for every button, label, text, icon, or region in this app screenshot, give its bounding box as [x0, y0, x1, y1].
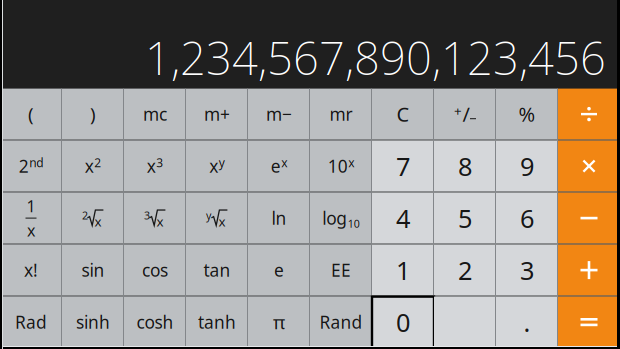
staticText: x [147, 155, 156, 178]
staticText: mc [143, 103, 167, 126]
button[interactable]: blank [434, 297, 496, 348]
staticText: x [95, 212, 102, 230]
button[interactable]: x cubed [124, 141, 186, 192]
staticText: 7 [396, 149, 410, 183]
button[interactable]: seven [372, 141, 434, 192]
staticText: 3 [144, 208, 150, 222]
staticText: 2 [19, 155, 29, 178]
staticText: ) [90, 102, 96, 126]
staticText: m− [266, 103, 292, 126]
staticText: Rand [319, 311, 362, 334]
staticText: e [271, 155, 281, 178]
staticText: x [27, 220, 35, 241]
button[interactable]: two [434, 245, 496, 296]
staticText: 3 [520, 253, 534, 287]
button[interactable]: natural logarithm [248, 193, 310, 244]
button[interactable]: factorial [0, 245, 62, 296]
staticText: 10 [348, 216, 360, 231]
button[interactable]: hyperbolic sine [62, 297, 124, 348]
button[interactable]: plus minus [434, 89, 496, 140]
button[interactable]: tangent [186, 245, 248, 296]
button[interactable]: close parenthesis [62, 89, 124, 140]
staticText: x [219, 212, 226, 230]
staticText: x! [24, 259, 38, 282]
staticText: nd [29, 155, 43, 171]
button[interactable]: pi [248, 297, 310, 348]
button[interactable]: hyperbolic cosine [124, 297, 186, 348]
button[interactable]: eight [434, 141, 496, 192]
staticText: x [157, 212, 164, 230]
button[interactable]: zero [372, 297, 434, 348]
staticText: 10 [328, 155, 348, 178]
staticText: y [219, 155, 225, 171]
staticText: % [518, 101, 535, 127]
staticText: 1,234,567,890,123,456 [145, 27, 606, 88]
button[interactable]: cube root of x [124, 193, 186, 244]
staticText: Rad [15, 311, 47, 334]
staticText: tan [203, 259, 230, 282]
staticText: 1 [396, 253, 410, 287]
button[interactable]: multiply [558, 141, 620, 192]
button[interactable]: random [310, 297, 372, 348]
button[interactable]: minus [558, 193, 620, 244]
button[interactable]: memory subtract [248, 89, 310, 140]
button[interactable]: ten to the power of x [310, 141, 372, 192]
button[interactable]: decimal point [496, 297, 558, 348]
staticText: x [348, 155, 354, 171]
staticText: mr [329, 103, 352, 126]
staticText: + [454, 102, 462, 119]
button[interactable]: one [372, 245, 434, 296]
staticText: x [85, 155, 94, 178]
staticText: / [462, 101, 469, 127]
button[interactable]: radians [0, 297, 62, 348]
staticText: 3 [156, 155, 163, 171]
button[interactable]: memory clear [124, 89, 186, 140]
staticText: x [281, 155, 287, 171]
button[interactable]: equals [558, 297, 620, 348]
button[interactable]: percent [496, 89, 558, 140]
button[interactable]: clear [372, 89, 434, 140]
button[interactable]: six [496, 193, 558, 244]
staticText: ln [271, 207, 286, 230]
button[interactable]: memory add [186, 89, 248, 140]
staticText: 2 [82, 208, 88, 222]
button[interactable]: four [372, 193, 434, 244]
button[interactable]: x to the power of y [186, 141, 248, 192]
button[interactable]: hyperbolic tangent [186, 297, 248, 348]
staticText: 2 [94, 155, 101, 171]
staticText: y [206, 208, 211, 222]
staticText: 4 [396, 201, 410, 235]
button[interactable]: open parenthesis [0, 89, 62, 140]
button[interactable]: logarithm base ten [310, 193, 372, 244]
staticText: 0 [396, 305, 410, 339]
staticText: 2 [458, 253, 472, 287]
staticText: e [274, 259, 284, 282]
button[interactable]: euler's number [248, 245, 310, 296]
button[interactable]: e to the power of x [248, 141, 310, 192]
button[interactable]: plus [558, 245, 620, 296]
button[interactable]: divide [558, 89, 620, 140]
button[interactable]: one divided by x [0, 193, 62, 244]
button[interactable]: memory recall [310, 89, 372, 140]
button[interactable]: square root of x [62, 193, 124, 244]
staticText: EE [331, 259, 351, 282]
button[interactable]: three [496, 245, 558, 296]
staticText: sinh [76, 311, 110, 334]
button[interactable]: five [434, 193, 496, 244]
button[interactable]: x squared [62, 141, 124, 192]
button[interactable]: y root of x [186, 193, 248, 244]
button[interactable]: second functions [0, 141, 62, 192]
staticText: 9 [520, 149, 534, 183]
button[interactable]: exponent [310, 245, 372, 296]
staticText: 6 [520, 201, 534, 235]
staticText: . [523, 305, 530, 339]
button[interactable]: sine [62, 245, 124, 296]
staticText: tanh [198, 311, 236, 334]
button[interactable]: nine [496, 141, 558, 192]
staticText: cos [142, 259, 168, 282]
staticText: 1 [26, 195, 35, 217]
staticText: π [273, 310, 285, 334]
staticText: C [396, 101, 409, 127]
staticText: sin [81, 259, 104, 282]
button[interactable]: cosine [124, 245, 186, 296]
